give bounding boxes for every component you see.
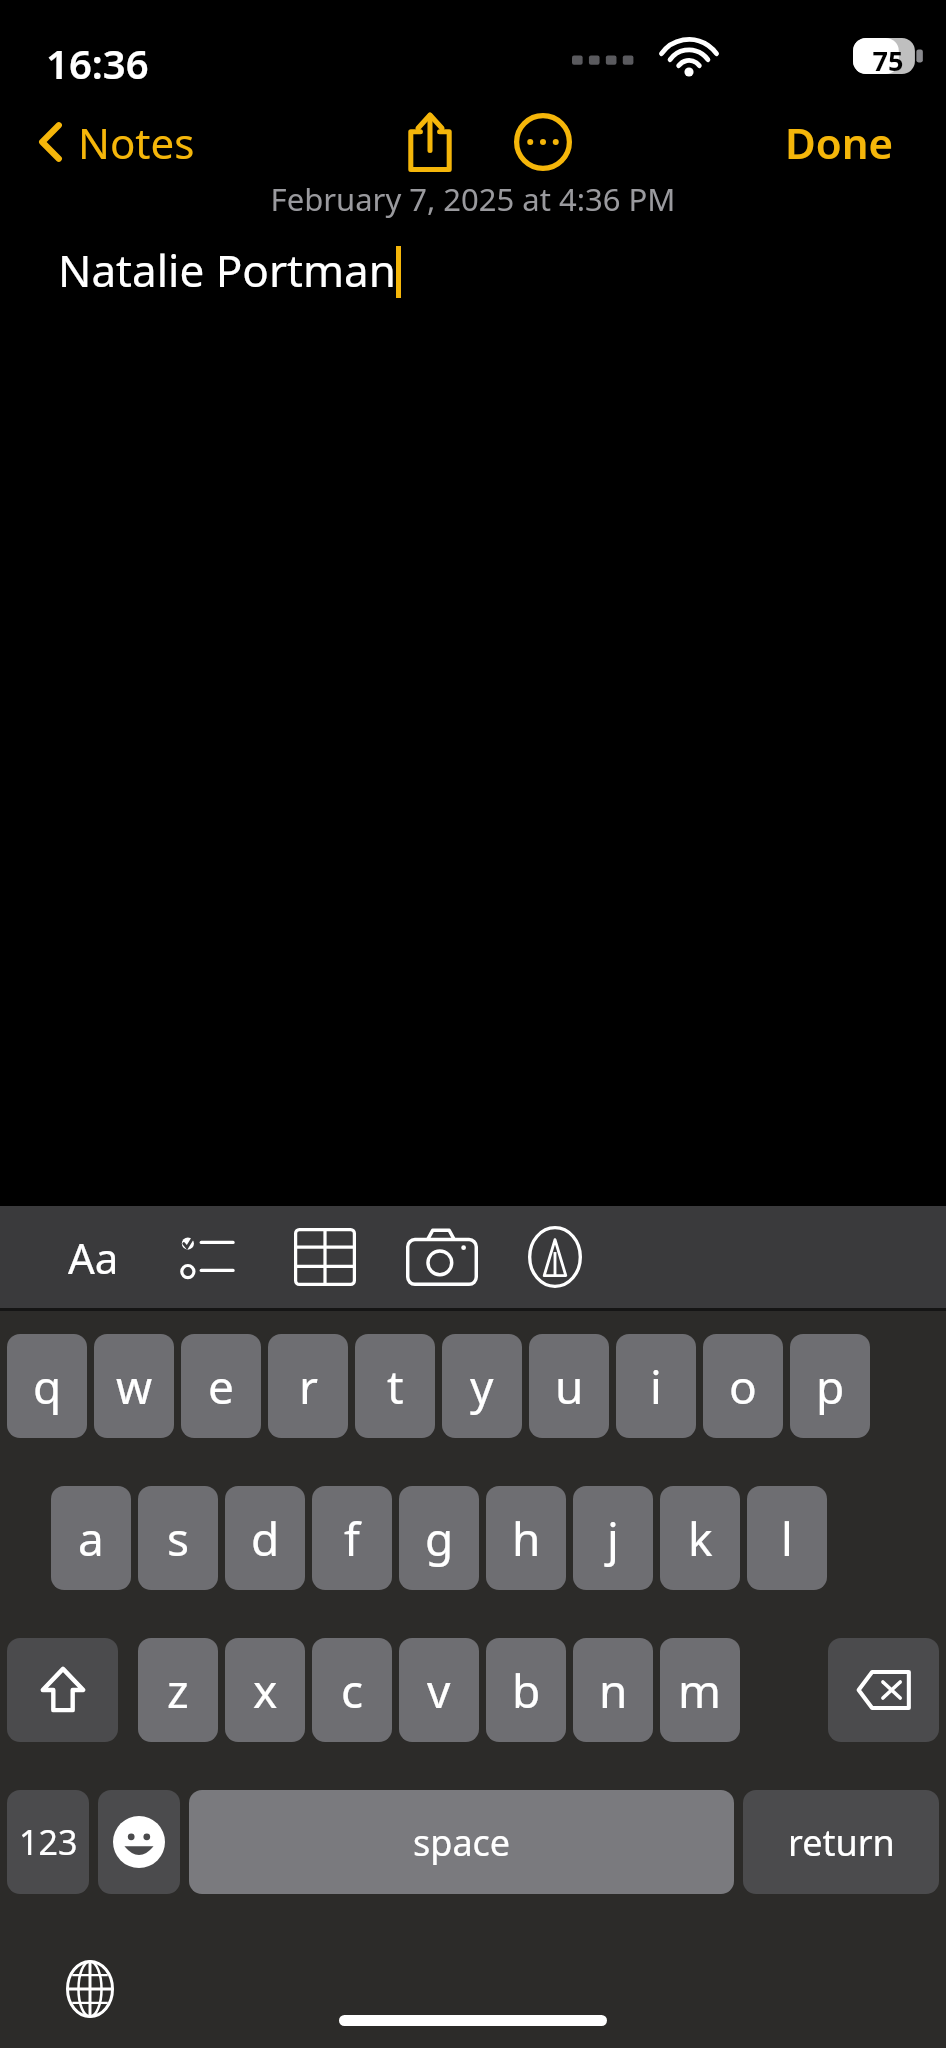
button[interactable]: i — [616, 1334, 696, 1438]
staticText: p — [816, 1355, 845, 1418]
staticText: e — [208, 1355, 234, 1418]
button[interactable]: f — [312, 1486, 392, 1590]
button[interactable]: b — [486, 1638, 566, 1742]
button[interactable]: 123 — [7, 1790, 89, 1894]
button[interactable]: h — [486, 1486, 566, 1590]
button[interactable]: Emoji — [98, 1790, 180, 1894]
staticText: i — [650, 1355, 662, 1418]
staticText: b — [512, 1659, 541, 1722]
staticText: Aa — [68, 1229, 119, 1286]
button[interactable]: Share — [393, 105, 467, 179]
staticText: return — [788, 1818, 895, 1867]
button[interactable]: y — [442, 1334, 522, 1438]
button[interactable]: l — [747, 1486, 827, 1590]
staticText: o — [729, 1355, 757, 1418]
button[interactable]: j — [573, 1486, 653, 1590]
button[interactable]: s — [138, 1486, 218, 1590]
button[interactable]: c — [312, 1638, 392, 1742]
button[interactable]: n — [573, 1638, 653, 1742]
button[interactable]: Checklist — [162, 1206, 252, 1308]
button[interactable]: Aa — [52, 1206, 134, 1308]
button[interactable]: e — [181, 1334, 261, 1438]
button[interactable]: r — [268, 1334, 348, 1438]
button[interactable]: Done — [600, 105, 920, 179]
staticText: Done — [785, 114, 894, 171]
button[interactable]: Table — [280, 1206, 370, 1308]
button[interactable]: m — [660, 1638, 740, 1742]
staticText: z — [167, 1659, 189, 1722]
button[interactable]: w — [94, 1334, 174, 1438]
staticText: s — [167, 1507, 190, 1570]
button[interactable]: g — [399, 1486, 479, 1590]
staticText: Notes — [78, 114, 195, 171]
button[interactable]: d — [225, 1486, 305, 1590]
staticText: f — [344, 1507, 360, 1570]
staticText: v — [427, 1659, 451, 1722]
staticText: l — [781, 1507, 793, 1570]
button[interactable]: k — [660, 1486, 740, 1590]
staticText: t — [387, 1355, 404, 1418]
staticText: 75 — [862, 42, 914, 79]
staticText: Natalie Portman — [58, 240, 396, 300]
staticText: g — [425, 1507, 454, 1570]
button[interactable]: x — [225, 1638, 305, 1742]
button[interactable]: v — [399, 1638, 479, 1742]
staticText: 123 — [19, 1819, 78, 1865]
button[interactable]: o — [703, 1334, 783, 1438]
staticText: c — [341, 1659, 364, 1722]
button[interactable]: Backspace — [828, 1638, 939, 1742]
staticText: 16:36 — [46, 36, 149, 90]
button[interactable]: return — [743, 1790, 939, 1894]
staticText: n — [599, 1659, 628, 1722]
staticText: k — [688, 1507, 713, 1570]
staticText: q — [33, 1355, 62, 1418]
button[interactable]: t — [355, 1334, 435, 1438]
button[interactable]: a — [51, 1486, 131, 1590]
button[interactable]: Switch keyboard language — [52, 1951, 128, 2027]
staticText: x — [253, 1659, 278, 1722]
button[interactable]: More options — [506, 105, 580, 179]
button[interactable]: z — [138, 1638, 218, 1742]
staticText: h — [512, 1507, 541, 1570]
staticText: space — [413, 1818, 511, 1867]
staticText: February 7, 2025 at 4:36 PM — [0, 178, 946, 220]
staticText: m — [678, 1659, 722, 1722]
button[interactable]: u — [529, 1334, 609, 1438]
button[interactable]: Camera — [394, 1206, 490, 1308]
button[interactable]: Markup — [510, 1206, 600, 1308]
staticText: y — [470, 1355, 494, 1418]
button[interactable]: q — [7, 1334, 87, 1438]
staticText: a — [78, 1507, 104, 1570]
staticText: j — [607, 1507, 619, 1570]
button[interactable]: p — [790, 1334, 870, 1438]
button[interactable]: Shift — [7, 1638, 118, 1742]
staticText: r — [299, 1355, 318, 1418]
button[interactable]: Notes — [30, 108, 203, 176]
staticText: d — [251, 1507, 280, 1570]
staticText: u — [555, 1355, 584, 1418]
button[interactable]: space — [189, 1790, 734, 1894]
staticText: w — [116, 1355, 153, 1418]
